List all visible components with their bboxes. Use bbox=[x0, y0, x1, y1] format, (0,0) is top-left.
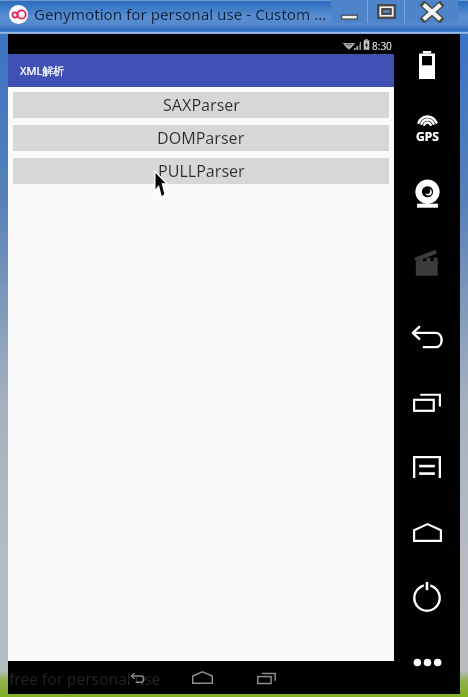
button[interactable]: Camera bbox=[394, 171, 460, 215]
button[interactable]: Home bbox=[394, 510, 460, 554]
staticText: PULLParser bbox=[158, 160, 245, 182]
staticText: DOMParser bbox=[157, 127, 245, 149]
button[interactable]: Recent apps bbox=[394, 380, 460, 424]
button[interactable]: Back bbox=[121, 661, 153, 694]
staticText: GPS bbox=[416, 128, 439, 144]
button[interactable]: Record bbox=[394, 240, 460, 284]
staticText: 8:30 bbox=[372, 39, 392, 53]
button[interactable]: Recent apps bbox=[250, 661, 282, 694]
button[interactable]: More bbox=[394, 640, 460, 684]
staticText: SAXParser bbox=[163, 94, 240, 116]
staticText: Genymotion for personal use - Custom ... bbox=[34, 4, 327, 25]
staticText: free for personal use bbox=[9, 668, 161, 689]
button[interactable]: Back bbox=[394, 315, 460, 359]
button[interactable]: SAXParser bbox=[13, 92, 389, 118]
button[interactable]: Maximize bbox=[368, 0, 404, 23]
button[interactable]: Close bbox=[405, 0, 458, 23]
button[interactable]: Menu bbox=[394, 445, 460, 489]
button[interactable]: Battery bbox=[394, 43, 460, 87]
button[interactable]: GPS bbox=[394, 107, 460, 151]
button[interactable]: Minimize bbox=[331, 0, 367, 23]
button[interactable]: Home bbox=[186, 661, 218, 694]
button[interactable]: Power bbox=[394, 575, 460, 619]
button[interactable]: PULLParser bbox=[13, 158, 389, 184]
button[interactable]: DOMParser bbox=[13, 125, 389, 151]
staticText: XML解析 bbox=[20, 63, 65, 78]
